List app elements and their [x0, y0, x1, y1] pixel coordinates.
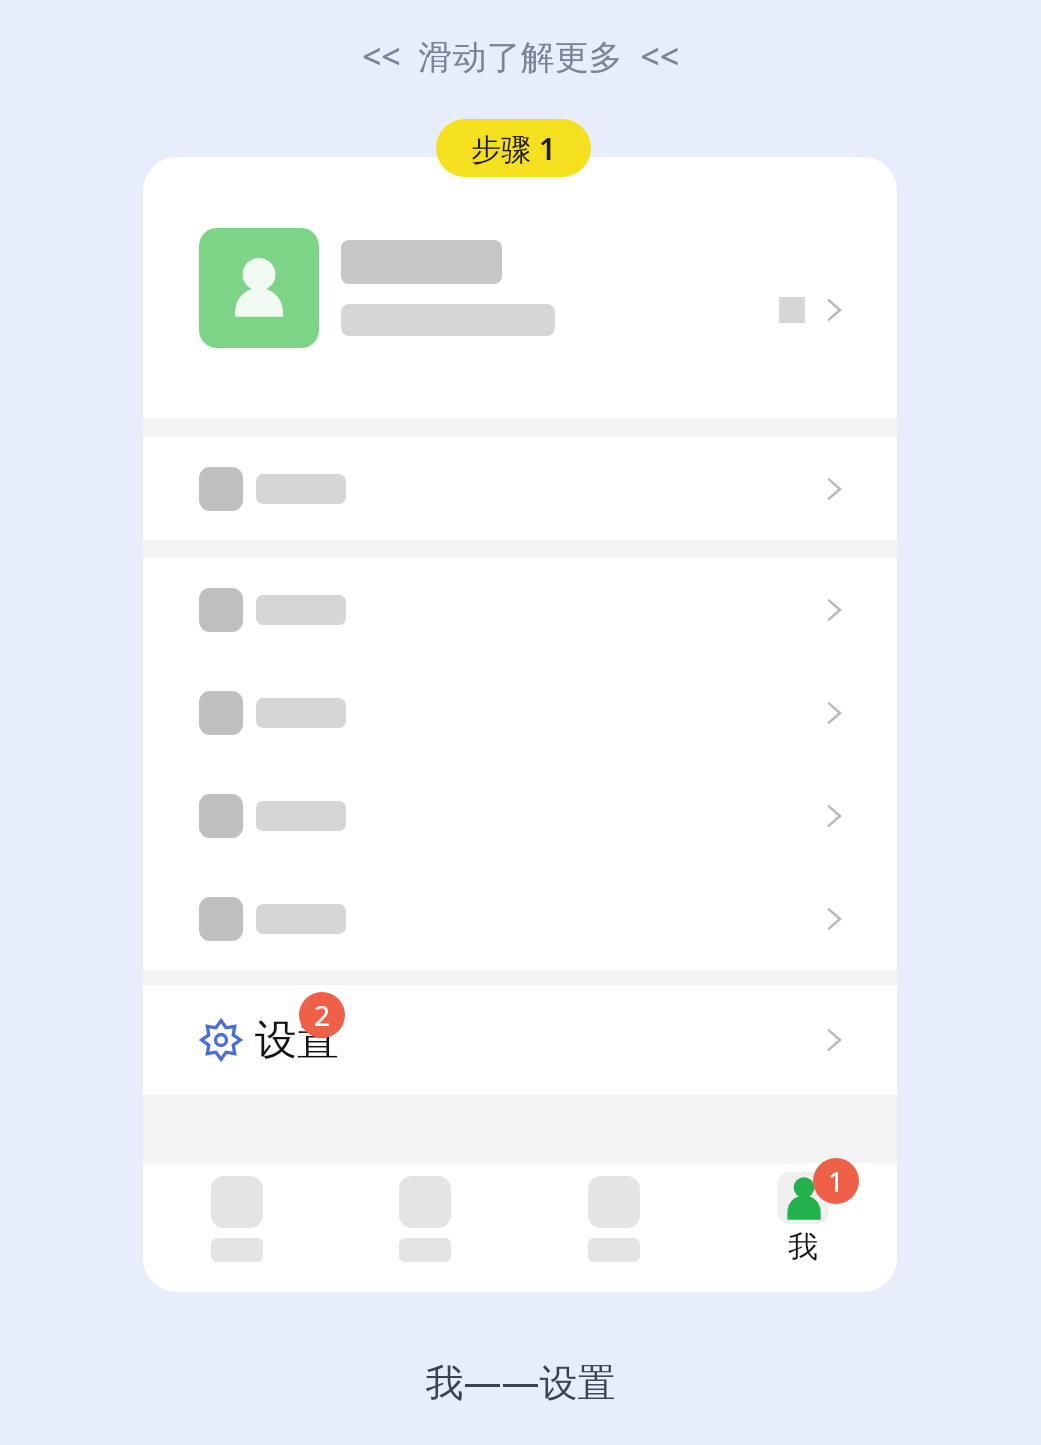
other: Open: [819, 595, 849, 625]
button[interactable]: Open: [143, 661, 897, 764]
button[interactable]: Open: [143, 867, 897, 970]
staticText: << 滑动了解更多 <<: [0, 33, 1041, 79]
button[interactable]: Open: [143, 558, 897, 661]
other: Open: [819, 474, 849, 504]
button[interactable]: 步骤 1: [436, 119, 591, 177]
button[interactable]: 1: [708, 1172, 897, 1266]
button[interactable]: [519, 1176, 708, 1262]
other: Open: [819, 1025, 849, 1055]
button[interactable]: Open: [143, 157, 897, 418]
other: Settings: [199, 1018, 243, 1062]
other: Open: [819, 698, 849, 728]
other: Open: [819, 904, 849, 934]
button[interactable]: Open: [143, 764, 897, 867]
staticText: 设置: [255, 1014, 339, 1067]
staticText: 我: [788, 1228, 818, 1266]
staticText: 我——设置: [0, 1355, 1041, 1407]
staticText: 2: [314, 996, 331, 1034]
button[interactable]: [331, 1176, 519, 1262]
staticText: 1: [828, 1162, 845, 1200]
staticText: 步骤 1: [471, 128, 556, 169]
other: Open: [819, 295, 849, 325]
button[interactable]: [143, 1176, 331, 1262]
other: Open: [819, 801, 849, 831]
button[interactable]: Settings: [143, 985, 897, 1095]
button[interactable]: Open: [143, 437, 897, 540]
